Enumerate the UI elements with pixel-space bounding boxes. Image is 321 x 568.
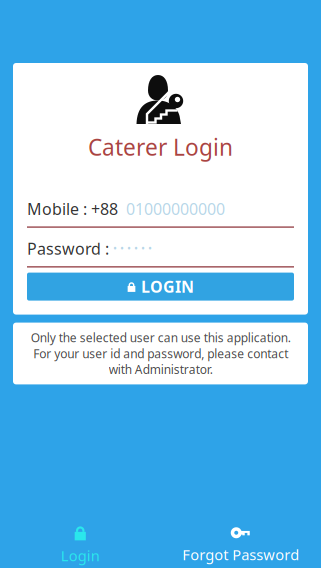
staticText: • • • • • •	[113, 241, 152, 256]
button[interactable]: Forgot Password	[160, 526, 321, 564]
button[interactable]: Login	[0, 525, 160, 565]
staticText: LOGIN	[141, 276, 194, 297]
staticText: Forgot Password	[182, 545, 299, 564]
button[interactable]: LOGIN	[27, 273, 294, 301]
staticText: Caterer Login	[88, 132, 233, 162]
staticText: Login	[61, 546, 100, 565]
staticText: 01000000000	[118, 198, 225, 219]
staticText: Mobile : +88	[27, 198, 118, 219]
staticText: Only the selected user can use this appl…	[30, 330, 290, 377]
staticText: Password :	[27, 238, 113, 259]
